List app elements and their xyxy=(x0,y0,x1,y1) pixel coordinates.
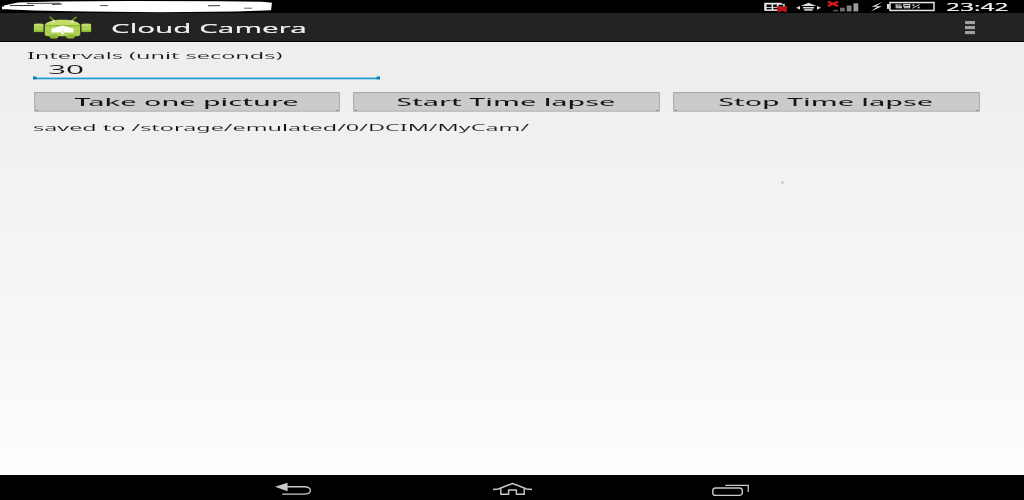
staticText: 23:42 xyxy=(946,0,1010,14)
staticText: saved to /storage/emulated/0/DCIM/MyCam/ xyxy=(33,122,531,134)
button[interactable]: Recent apps xyxy=(671,475,789,500)
button[interactable]: More options xyxy=(945,13,995,42)
staticText: Intervals (unit seconds) xyxy=(27,49,284,61)
button[interactable]: Back xyxy=(235,475,353,500)
staticText: Start Time lapse xyxy=(396,95,617,109)
staticText: Cloud Camera xyxy=(111,19,308,37)
staticText: Stop Time lapse xyxy=(718,95,936,109)
staticText: 30 xyxy=(48,61,85,78)
button[interactable]: Start Time lapse xyxy=(353,92,660,112)
button[interactable]: Take one picture xyxy=(34,92,340,112)
button[interactable]: Home xyxy=(453,475,571,500)
button[interactable]: Stop Time lapse xyxy=(673,92,980,112)
staticText: Take one picture xyxy=(74,95,300,109)
